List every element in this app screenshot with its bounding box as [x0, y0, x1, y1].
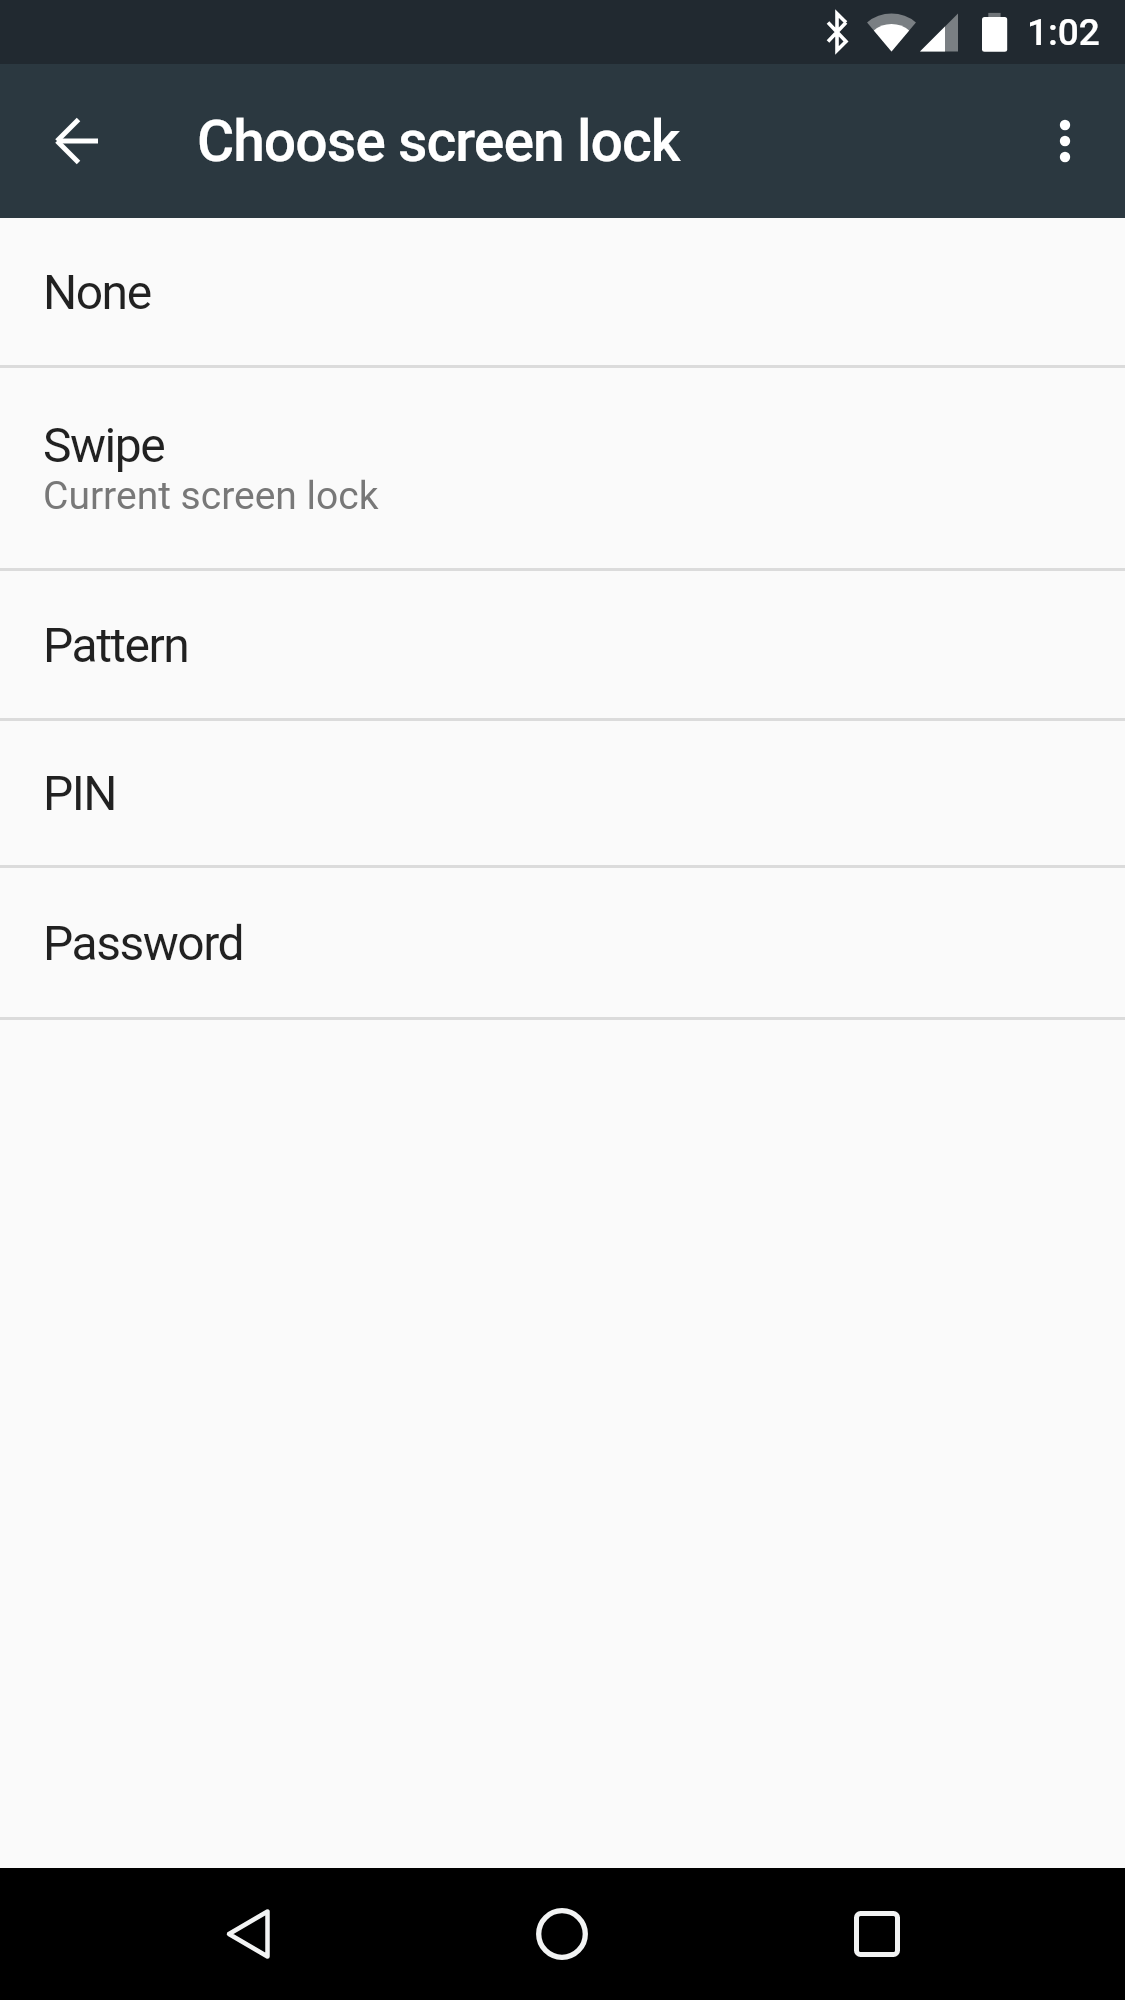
staticText: PIN [43, 765, 117, 821]
staticText: None [43, 264, 151, 320]
button[interactable] [822, 1879, 932, 1989]
button[interactable] [507, 1879, 617, 1989]
staticText: Current screen lock [43, 473, 379, 519]
staticText: Pattern [43, 617, 189, 673]
staticText: Password [43, 915, 244, 971]
button[interactable]: PIN [0, 721, 1125, 865]
button[interactable]: None [0, 218, 1125, 365]
button[interactable]: Swipe [0, 368, 1125, 568]
staticText: 1:02 [1027, 11, 1100, 54]
button[interactable] [193, 1879, 303, 1989]
button[interactable] [1004, 64, 1125, 218]
button[interactable]: Pattern [0, 571, 1125, 718]
button[interactable]: Password [0, 868, 1125, 1017]
staticText: Swipe [43, 417, 165, 473]
button[interactable] [0, 64, 155, 218]
staticText: Choose screen lock [197, 108, 680, 175]
